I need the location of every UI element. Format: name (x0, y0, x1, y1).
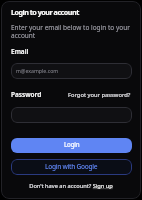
button[interactable] (11, 107, 132, 123)
staticText: Login to your account (11, 7, 79, 17)
button[interactable]: Don't have an account? Sign up (29, 182, 113, 190)
button[interactable]: Login with Google (11, 159, 132, 175)
staticText: Login (64, 140, 80, 148)
button[interactable]: Login (11, 138, 132, 153)
staticText: Email (11, 47, 29, 56)
staticText: Login with Google (45, 162, 98, 171)
button[interactable]: m@example.com (11, 63, 132, 79)
staticText: Password (11, 90, 42, 99)
staticText: m@example.com (16, 67, 59, 74)
staticText: Enter your email below to login to your … (11, 23, 133, 40)
button[interactable]: Forgot your password? (68, 91, 131, 99)
